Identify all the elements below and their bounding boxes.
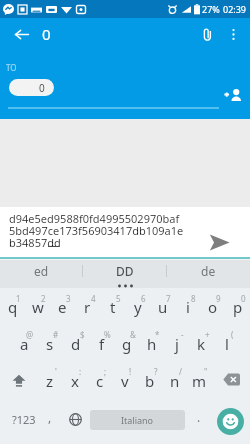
staticText: p [233,297,243,317]
staticText: d [71,334,81,354]
staticText: l [225,334,229,354]
button[interactable]: ! [112,361,137,398]
button[interactable]: More options [223,24,243,44]
button[interactable]: Send [199,222,239,262]
button[interactable]: 0 [9,79,54,96]
button[interactable]: ed [0,260,82,282]
button[interactable]: , [40,398,60,444]
staticText: / [179,366,182,377]
staticText: d94e5ed9588f0fd4995502970baf 5bd497ce173… [9,211,184,250]
button[interactable]: 1 [0,288,25,324]
button[interactable]: / [162,361,187,398]
button[interactable]: 0 [225,288,250,324]
button[interactable]: Back [9,22,33,46]
staticText: 0 [241,293,246,304]
staticText: k [197,334,206,354]
staticText: 6 [141,293,146,304]
button[interactable]: ( [214,324,239,361]
staticText: y [134,297,142,317]
staticText: # [53,329,59,340]
button[interactable]: 7 [150,288,175,324]
staticText: TO [6,62,17,73]
staticText: u [158,297,168,317]
button[interactable]: Emoji [217,408,244,435]
staticText: n [170,371,180,391]
button[interactable]: 8 [175,288,200,324]
button[interactable]: % [89,324,114,361]
button[interactable]: ? [137,361,162,398]
staticText: Italiano [121,414,154,426]
button[interactable]: Shift [0,361,38,398]
staticText: 8 [191,293,196,304]
button[interactable]: ; [87,361,112,398]
staticText: q [8,297,18,317]
button[interactable]: 6 [125,288,150,324]
button[interactable]: 3 [50,288,75,324]
button[interactable]: de [167,260,250,282]
button[interactable]: 2 [25,288,50,324]
staticText: 1 [16,293,21,304]
staticText: 4 [91,293,96,304]
button[interactable]: . [189,398,209,444]
staticText: DD [116,263,134,279]
staticText: + [205,329,210,340]
button[interactable]: Attach [196,23,218,45]
staticText: 02:39 [223,3,247,15]
staticText: h [147,334,157,354]
button[interactable]: Add person [221,83,244,106]
staticText: ? [154,366,158,377]
staticText: b [145,371,155,391]
staticText: e [58,297,67,317]
button[interactable]: Change language [62,398,88,444]
button[interactable]: " [187,361,212,398]
staticText: r [84,297,91,317]
staticText: z [46,371,54,391]
staticText: ( [231,329,234,340]
staticText: $ [80,329,85,340]
staticText: g [122,334,132,354]
staticText: " [204,366,208,377]
button[interactable]: 5 [100,288,125,324]
staticText: m [192,371,207,391]
staticText: de [201,263,216,279]
staticText: o [208,297,218,317]
staticText: 5 [116,293,121,304]
staticText: f [99,334,105,354]
button[interactable]: 9 [200,288,225,324]
staticText: - [181,329,184,340]
button[interactable]: Italiano [90,410,185,430]
button[interactable]: $ [63,324,89,361]
staticText: t [110,297,116,317]
staticText: 0 [39,81,45,95]
button[interactable]: * [139,324,164,361]
staticText: ! [129,366,132,377]
staticText: & [130,329,136,340]
staticText: v [121,371,129,391]
staticText: 7 [166,293,171,304]
staticText: 0 [42,24,51,44]
staticText: i [186,297,190,317]
staticText: : [79,366,82,377]
button[interactable]: ?123 [0,398,48,444]
button[interactable]: - [164,324,189,361]
button[interactable]: ' [38,361,62,398]
staticText: a [20,334,29,354]
button[interactable]: DD [83,260,166,282]
button[interactable]: # [37,324,63,361]
button[interactable]: @ [11,324,37,361]
button[interactable]: : [62,361,87,398]
staticText: s [46,334,54,354]
staticText: ; [104,366,107,377]
button[interactable]: & [114,324,139,361]
staticText: w [32,297,44,317]
staticText: 3 [66,293,71,304]
button[interactable]: Backspace [212,361,250,398]
staticText: ed [34,263,49,279]
button[interactable]: 4 [75,288,100,324]
staticText: ?123 [12,412,36,427]
staticText: * [155,329,160,340]
button[interactable]: + [189,324,214,361]
staticText: ' [55,366,57,377]
staticText: j [175,334,179,354]
staticText: . [197,409,201,425]
